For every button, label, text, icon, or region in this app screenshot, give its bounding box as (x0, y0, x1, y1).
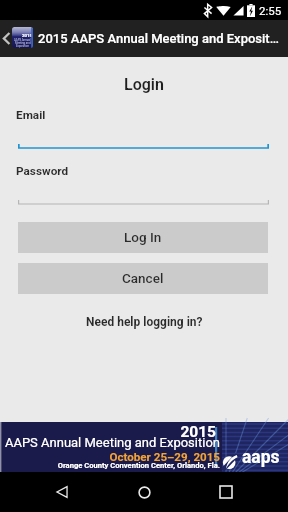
staticText: aaps (242, 447, 280, 468)
staticText: October 25–29, 2015 (0, 450, 220, 464)
staticText: Meeting and (15, 41, 31, 44)
staticText: 2015 AAPS Annual Meeting and Exposit… (38, 31, 279, 46)
staticText: AAPS Annual Meeting and Exposition (0, 435, 220, 450)
staticText: Email (16, 108, 46, 122)
staticText: Orange County Convention Center, Orlando… (0, 461, 220, 470)
staticText: Login (0, 75, 288, 94)
staticText: AAPS Annual (14, 38, 31, 41)
staticText: Cancel (122, 270, 164, 286)
button[interactable]: Home (124, 472, 164, 512)
button[interactable]: Recent apps (206, 472, 246, 512)
staticText: 2015 (12, 33, 32, 38)
button[interactable]: Need help logging in? (0, 312, 288, 332)
staticText: Need help logging in? (86, 315, 203, 329)
staticText: Exposition (16, 44, 30, 47)
staticText: 2015 (0, 423, 216, 441)
button[interactable]: Cancel (18, 263, 268, 294)
button[interactable]: 2015 (0, 422, 288, 472)
button[interactable]: Navigate up (0, 20, 12, 57)
button[interactable]: Back (42, 472, 82, 512)
staticText: Log In (124, 229, 162, 245)
button[interactable]: Log In (18, 222, 268, 253)
staticText: 2:55 (259, 4, 282, 17)
staticText: Password (16, 164, 69, 178)
